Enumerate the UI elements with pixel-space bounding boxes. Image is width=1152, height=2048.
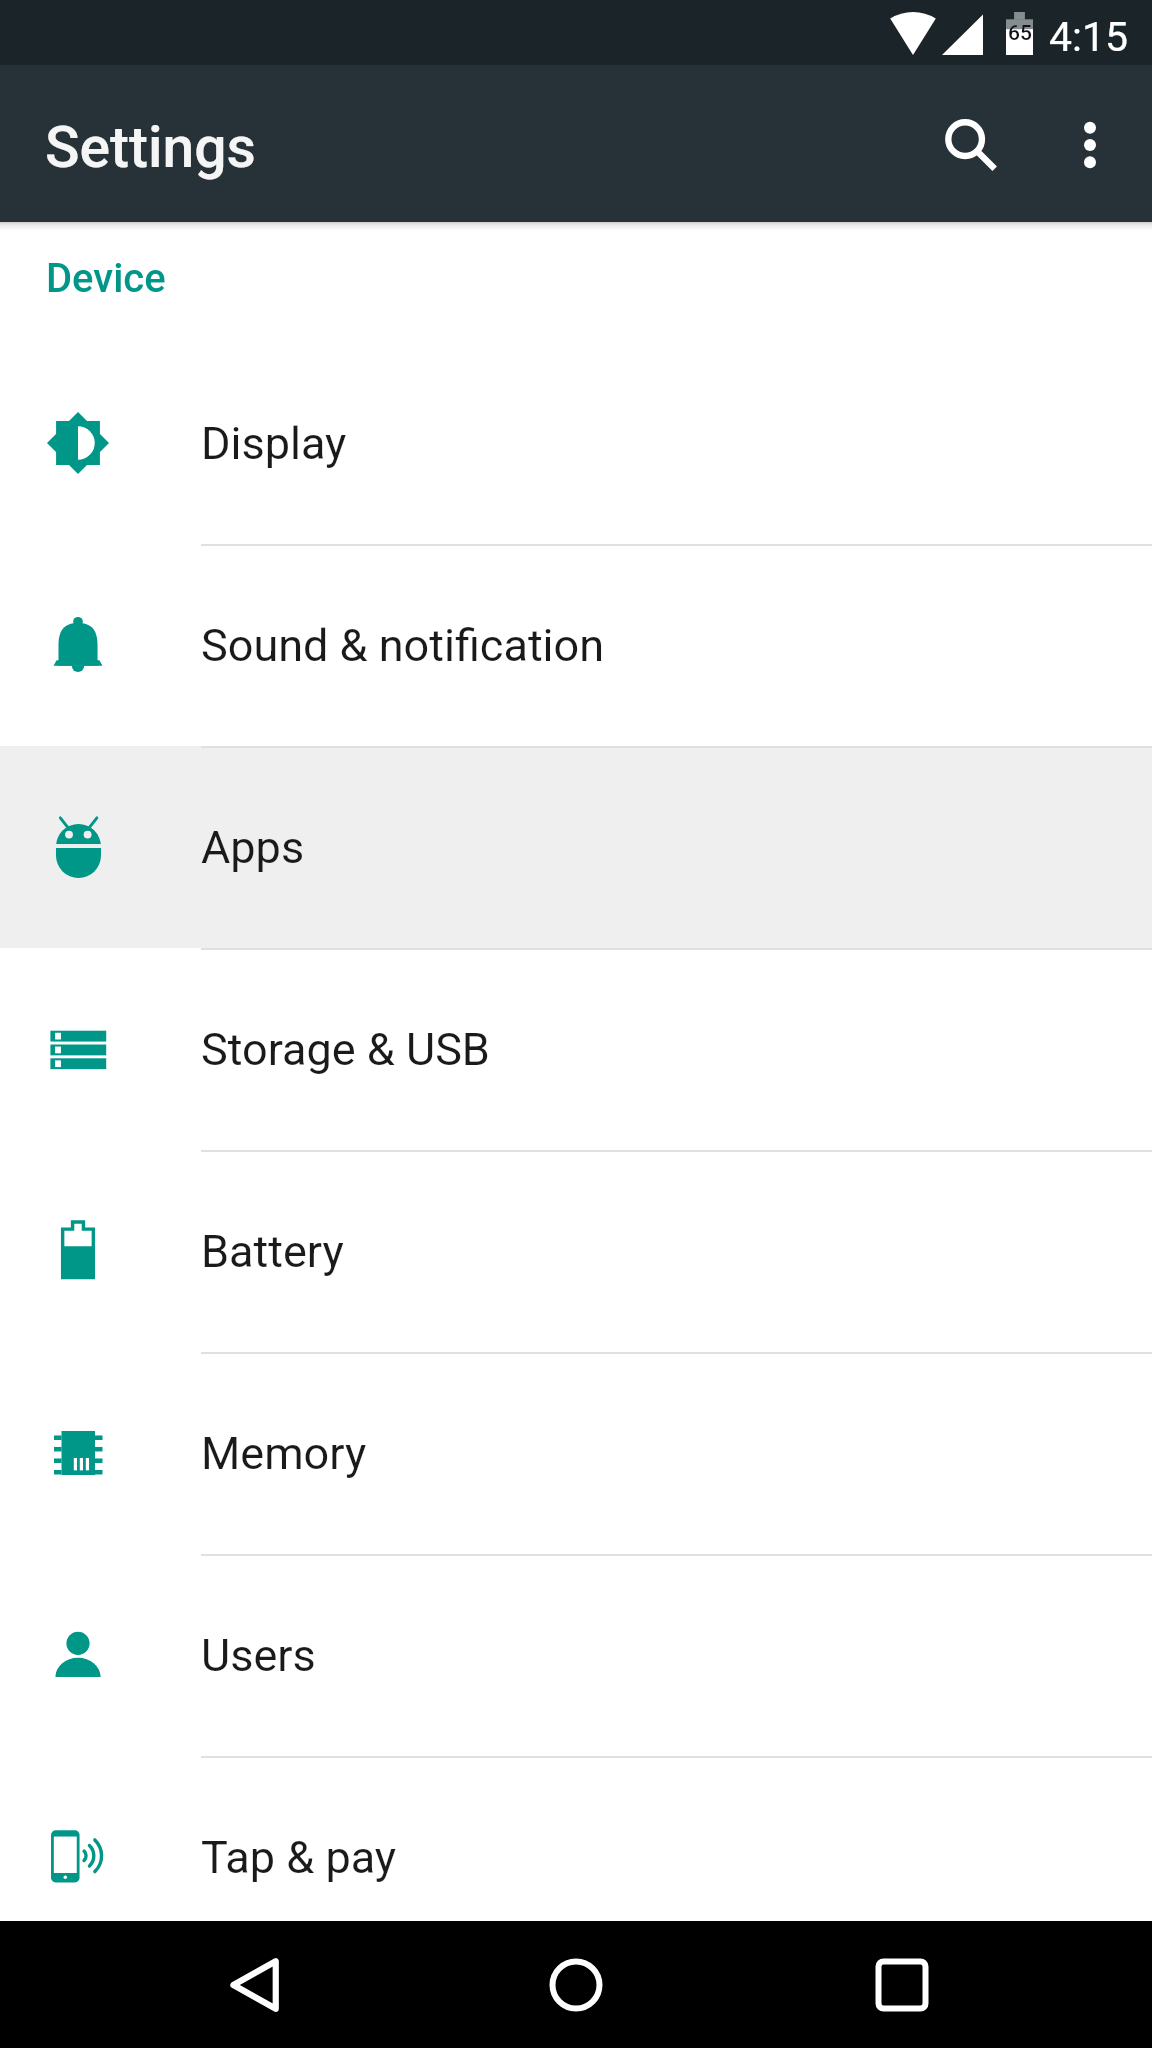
- button[interactable]: Display: [0, 342, 1152, 544]
- button[interactable]: Sound & notification: [0, 544, 1152, 746]
- button[interactable]: More options: [1034, 89, 1146, 201]
- button[interactable]: Tap & pay: [0, 1756, 1152, 1921]
- staticText: Device: [46, 255, 166, 302]
- staticText: Settings: [45, 114, 256, 181]
- button[interactable]: Search: [915, 89, 1027, 201]
- button[interactable]: Back: [158, 1921, 350, 2048]
- staticText: 65: [1008, 21, 1032, 46]
- staticText: Storage & USB: [201, 1023, 490, 1076]
- staticText: Display: [201, 417, 347, 470]
- button[interactable]: Users: [0, 1554, 1152, 1756]
- button[interactable]: Recents: [806, 1921, 998, 2048]
- staticText: Sound & notification: [201, 619, 605, 672]
- button[interactable]: Home: [480, 1921, 672, 2048]
- button[interactable]: Storage & USB: [0, 948, 1152, 1150]
- staticText: Battery: [201, 1225, 344, 1278]
- staticText: Users: [201, 1629, 316, 1682]
- staticText: Tap & pay: [201, 1831, 397, 1884]
- button[interactable]: Apps: [0, 746, 1152, 948]
- staticText: Apps: [201, 821, 305, 874]
- button[interactable]: Memory: [0, 1352, 1152, 1554]
- staticText: Memory: [201, 1427, 367, 1480]
- button[interactable]: Battery: [0, 1150, 1152, 1352]
- staticText: 4:15: [1049, 13, 1129, 61]
